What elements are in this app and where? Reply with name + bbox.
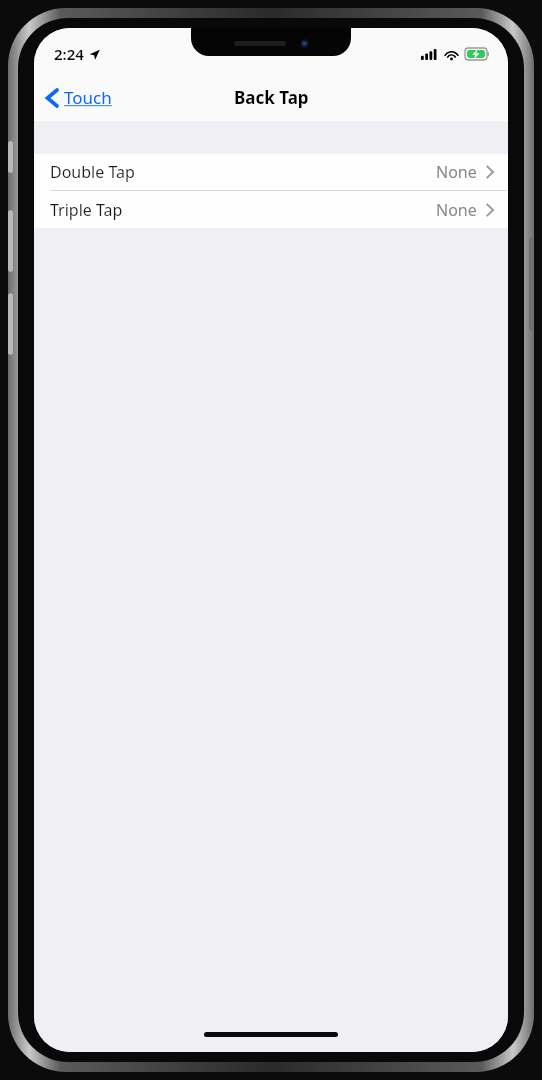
staticText: None (436, 161, 477, 183)
button[interactable]: Touch (34, 82, 122, 113)
staticText: Triple Tap (50, 199, 123, 221)
button[interactable]: Triple Tap (34, 191, 508, 228)
staticText: Double Tap (50, 161, 135, 183)
staticText: Back Tap (234, 86, 309, 109)
staticText: Touch (64, 86, 112, 109)
staticText: None (436, 199, 477, 221)
staticText: 2:24 (54, 44, 84, 64)
button[interactable]: Double Tap (34, 154, 508, 190)
